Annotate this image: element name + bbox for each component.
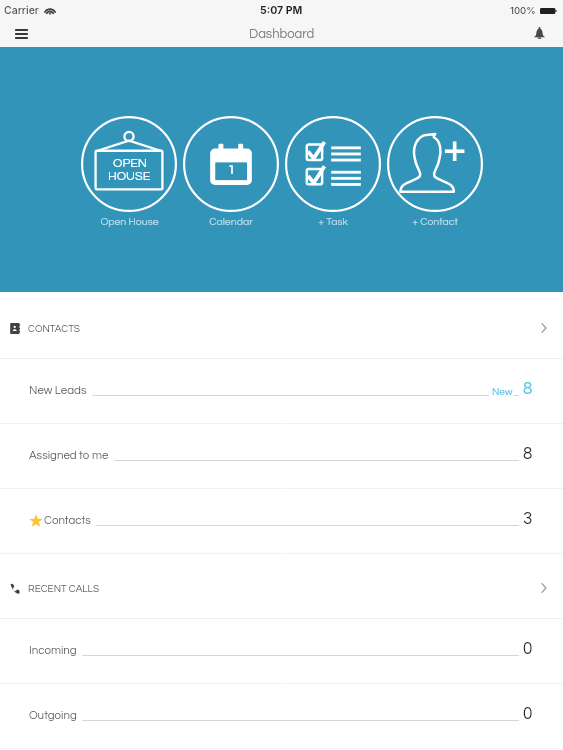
staticText: Open House (100, 216, 159, 227)
staticText: 0 (523, 640, 533, 658)
staticText: 3 (523, 510, 533, 528)
staticText: Dashboard (249, 27, 315, 40)
button[interactable]: OPEN (81, 116, 177, 227)
staticText: Carrier (4, 4, 39, 17)
button[interactable]: Notifications (526, 20, 552, 46)
staticText: Incoming (29, 645, 77, 657)
button[interactable]: CONTACTS (0, 294, 563, 359)
button[interactable]: Incoming (0, 619, 563, 684)
staticText: Calendar (209, 216, 253, 227)
button[interactable]: + Contact (387, 116, 483, 227)
button[interactable]: Contacts (0, 489, 563, 554)
button[interactable]: Open CONTACTS (541, 323, 547, 333)
button[interactable]: 1 (183, 116, 279, 227)
button[interactable]: New Leads (0, 359, 563, 424)
staticText: 100% (510, 5, 536, 16)
staticText: 8 (523, 445, 533, 463)
staticText: Outgoing (29, 710, 77, 722)
staticText: 0 (523, 705, 533, 723)
staticText: Assigned to me (29, 450, 109, 462)
button[interactable]: RECENT CALLS (0, 554, 563, 619)
button[interactable]: Assigned to me (0, 424, 563, 489)
staticText: 1 (228, 164, 235, 176)
staticText: New (492, 387, 513, 397)
staticText: 8 (523, 380, 533, 398)
staticText: + Task (318, 216, 348, 227)
staticText: CONTACTS (28, 324, 80, 334)
button[interactable]: + Task (285, 116, 381, 227)
staticText: + Contact (412, 216, 458, 227)
button[interactable]: Open RECENT CALLS (541, 583, 547, 593)
button[interactable]: Outgoing (0, 684, 563, 749)
staticText: HOUSE (108, 170, 151, 183)
staticText: Contacts (44, 515, 91, 527)
staticText: OPEN (113, 157, 147, 170)
staticText: 5:07 PM (260, 4, 303, 17)
staticText: New Leads (29, 385, 87, 397)
staticText: RECENT CALLS (28, 584, 100, 594)
button[interactable]: Menu (7, 20, 35, 47)
